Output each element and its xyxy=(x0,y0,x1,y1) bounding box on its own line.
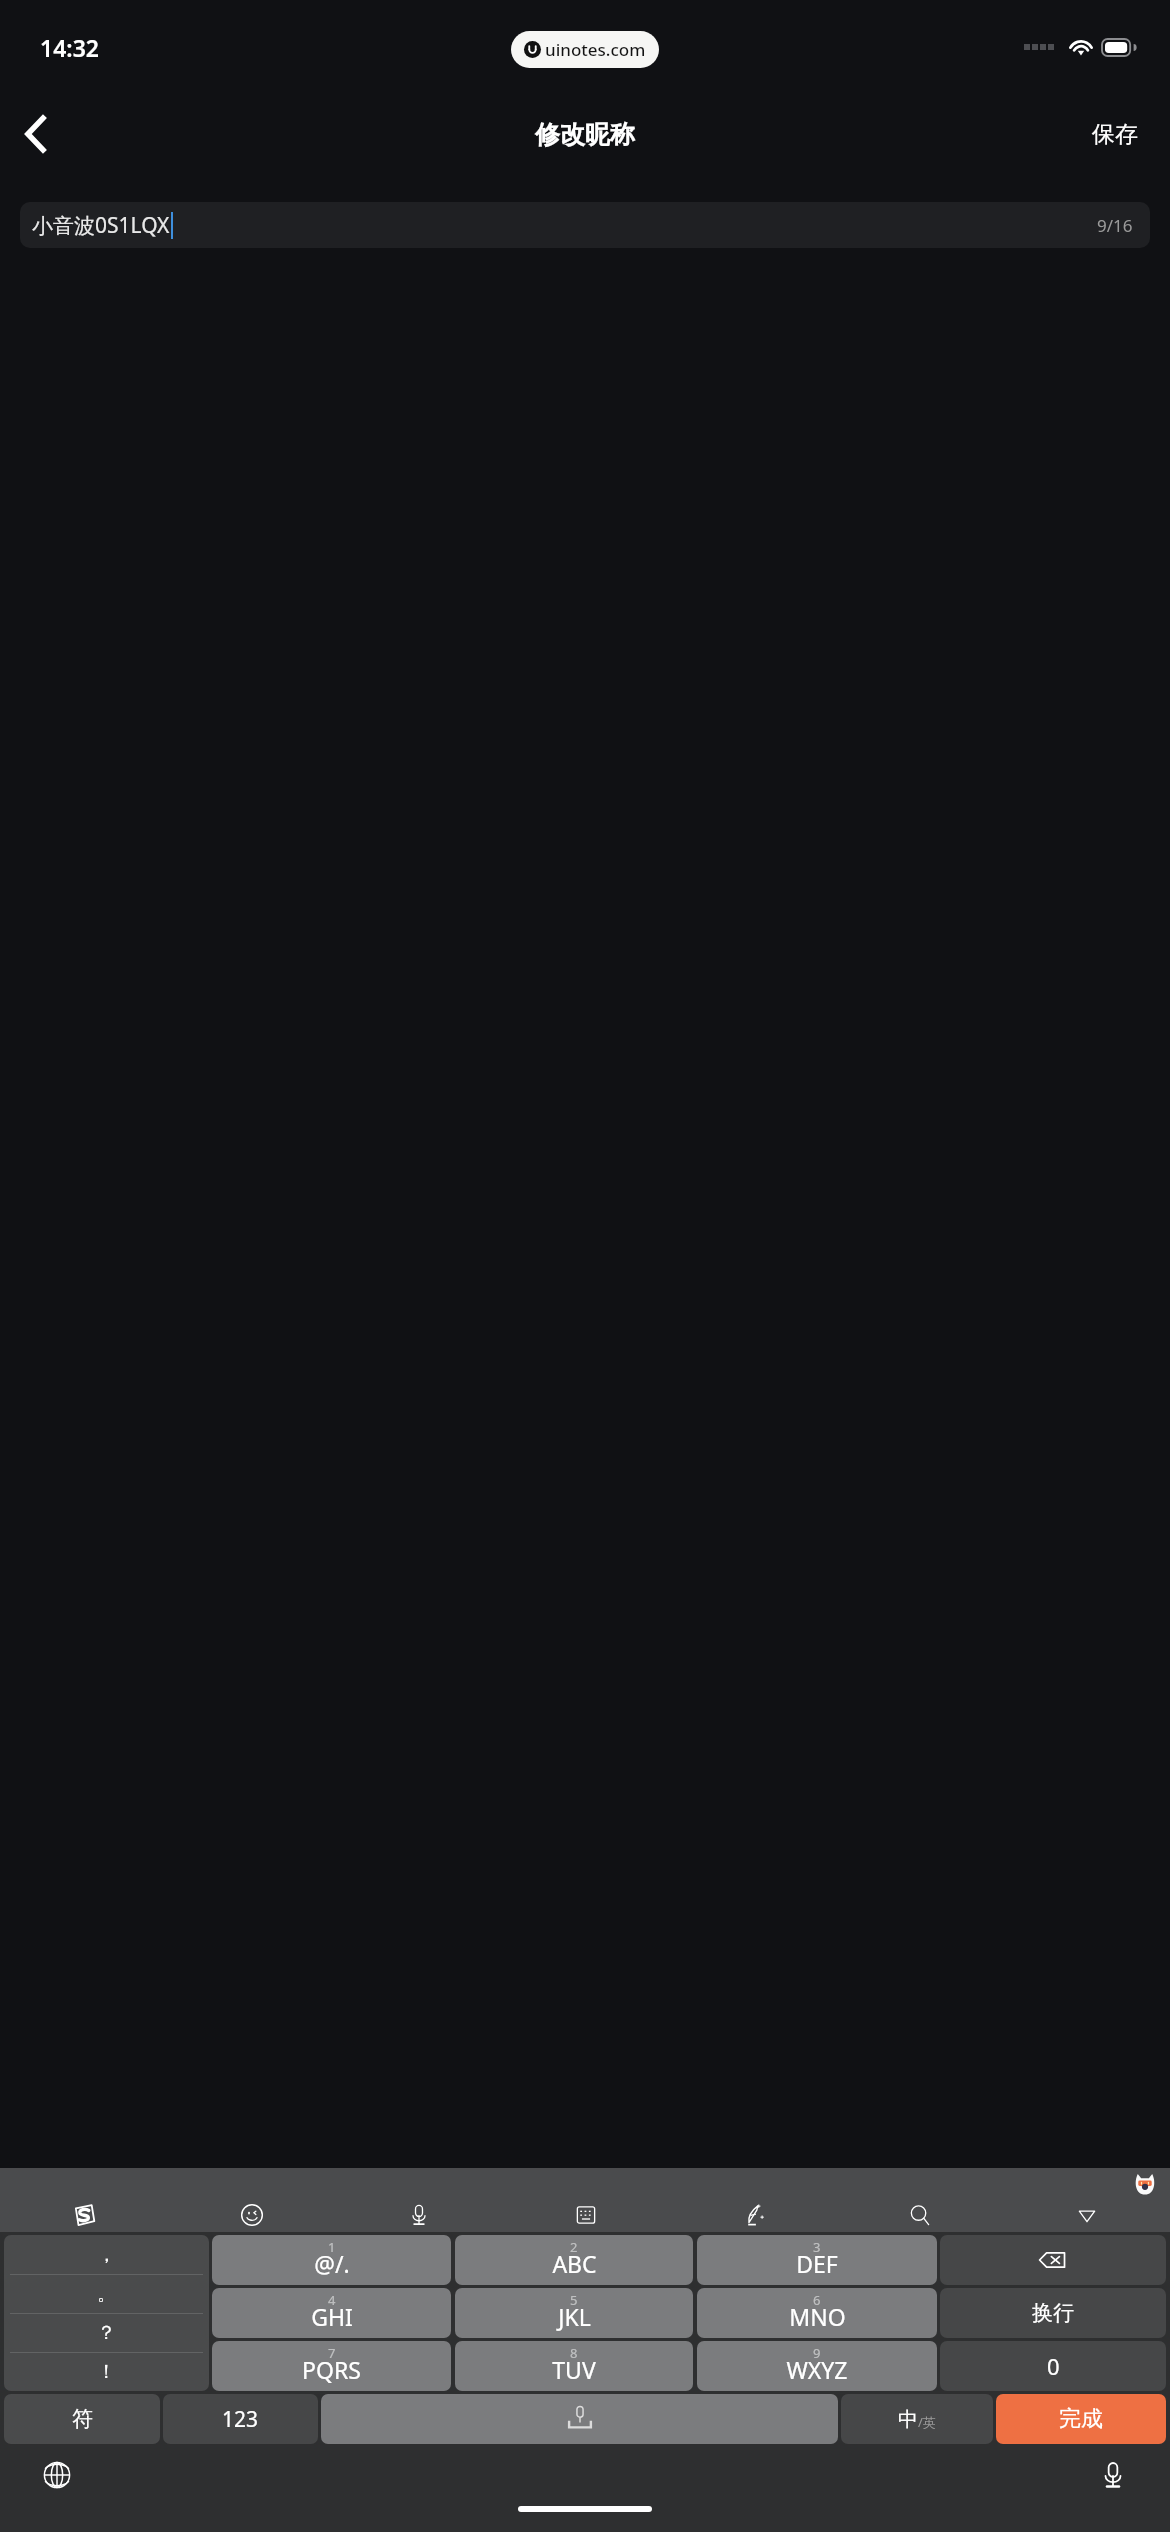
button[interactable]: 保存 xyxy=(1060,110,1170,159)
button[interactable]: 2 xyxy=(455,2235,693,2285)
staticText: 4 xyxy=(328,2291,336,2309)
button[interactable]: 123 xyxy=(163,2394,318,2444)
staticText: 2 xyxy=(570,2238,578,2256)
button[interactable]: Switch language xyxy=(40,2458,74,2492)
staticText: 3 xyxy=(813,2238,821,2256)
staticText: MNO xyxy=(789,2301,846,2332)
staticText: ？ xyxy=(97,2321,116,2345)
staticText: 8 xyxy=(570,2344,578,2362)
staticText: 中 xyxy=(898,2407,918,2432)
button[interactable]: Dictation xyxy=(1096,2458,1130,2492)
staticText: JKL xyxy=(558,2301,591,2332)
staticText: 换行 xyxy=(1032,2300,1074,2326)
button[interactable]: 。 xyxy=(4,2275,209,2313)
button[interactable]: 8 xyxy=(455,2341,693,2391)
staticText: 9/16 xyxy=(1097,214,1133,237)
button[interactable]: 换行 xyxy=(940,2288,1166,2338)
staticText: /英 xyxy=(918,2413,936,2431)
button[interactable]: 9 xyxy=(697,2341,937,2391)
staticText: 1 xyxy=(328,2238,336,2256)
button[interactable]: Assistant xyxy=(1133,2171,1157,2195)
staticText: TUV xyxy=(552,2354,596,2385)
button[interactable]: 1 xyxy=(212,2235,451,2285)
button[interactable]: Back xyxy=(0,98,72,170)
button[interactable]: ！ xyxy=(4,2353,209,2391)
staticText: uinotes.com xyxy=(545,38,646,61)
button[interactable]: 6 xyxy=(697,2288,937,2338)
staticText: ABC xyxy=(552,2248,597,2279)
button[interactable]: Backspace xyxy=(940,2235,1166,2285)
button[interactable]: ， xyxy=(4,2235,209,2274)
staticText: 符 xyxy=(72,2406,93,2432)
button[interactable]: 4 xyxy=(212,2288,451,2338)
button[interactable]: Sogou xyxy=(0,2198,168,2232)
staticText: ， xyxy=(97,2243,116,2267)
button[interactable]: 7 xyxy=(212,2341,451,2391)
staticText: 123 xyxy=(222,2405,259,2434)
staticText: 9 xyxy=(813,2344,821,2362)
staticText: @/. xyxy=(314,2248,350,2279)
button[interactable]: Collapse keyboard xyxy=(1003,2198,1170,2232)
staticText: 0 xyxy=(1047,2351,1060,2381)
staticText: 小音波0S1LQX xyxy=(32,211,170,240)
button[interactable]: Space xyxy=(321,2394,838,2444)
staticText: 5 xyxy=(570,2291,578,2309)
staticText: 。 xyxy=(97,2282,116,2306)
button[interactable]: 完成 xyxy=(996,2394,1166,2444)
staticText: 14:32 xyxy=(40,32,99,63)
staticText: 保存 xyxy=(1092,120,1138,149)
button[interactable]: Voice input xyxy=(335,2198,502,2232)
button[interactable]: ？ xyxy=(4,2314,209,2352)
staticText: 完成 xyxy=(1059,2405,1103,2433)
staticText: ！ xyxy=(97,2360,116,2384)
button[interactable]: 小音波0S1LQX xyxy=(20,202,1150,248)
button[interactable]: Handwriting xyxy=(669,2198,836,2232)
button[interactable]: 0 xyxy=(940,2341,1166,2391)
staticText: PQRS xyxy=(302,2354,361,2385)
staticText: 6 xyxy=(813,2291,821,2309)
staticText: DEF xyxy=(796,2248,838,2279)
staticText: 修改昵称 xyxy=(535,119,635,150)
button[interactable]: 5 xyxy=(455,2288,693,2338)
staticText: WXYZ xyxy=(786,2354,848,2385)
button[interactable]: Emoji xyxy=(168,2198,335,2232)
button[interactable]: 符 xyxy=(4,2394,160,2444)
button[interactable]: Keyboard layout xyxy=(502,2198,669,2232)
button[interactable]: 3 xyxy=(697,2235,937,2285)
button[interactable]: 中 xyxy=(841,2394,993,2444)
button[interactable]: Search xyxy=(836,2198,1003,2232)
staticText: GHI xyxy=(311,2301,353,2332)
staticText: 7 xyxy=(328,2344,336,2362)
